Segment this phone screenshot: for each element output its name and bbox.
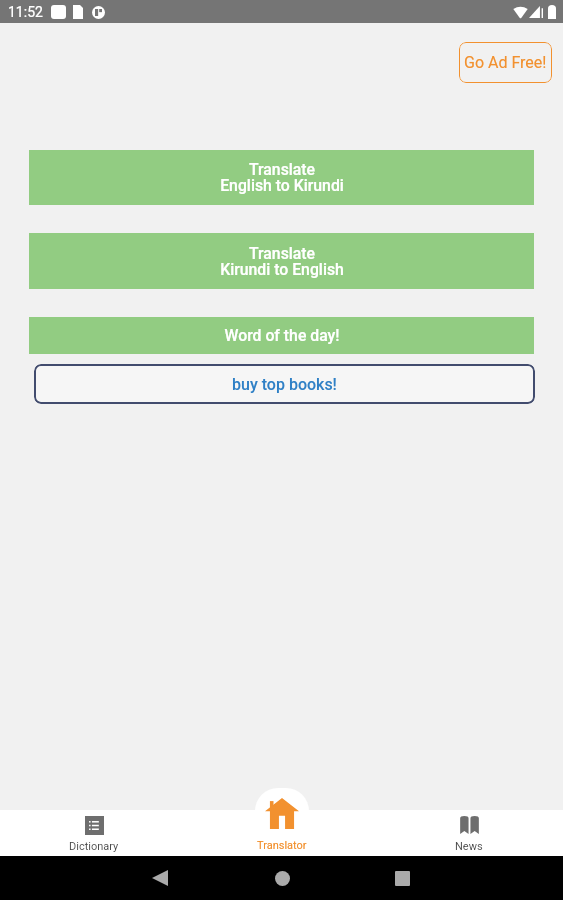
button[interactable]: Word of the day! — [29, 317, 534, 354]
button[interactable]: buy top books! — [34, 364, 535, 404]
button[interactable]: Recents — [382, 858, 422, 898]
button[interactable]: News — [375, 810, 563, 856]
staticText: Dictionary — [69, 840, 119, 853]
button[interactable]: Home — [262, 858, 302, 898]
staticText: 11:52 — [8, 4, 43, 20]
staticText: Go Ad Free! — [464, 53, 547, 72]
button[interactable]: Translator — [255, 788, 309, 834]
staticText: Word of the day! — [224, 326, 340, 345]
staticText: Translate English to Kirundi — [220, 160, 344, 195]
button[interactable]: Translate English to Kirundi — [29, 150, 534, 205]
button[interactable]: Go Ad Free! — [459, 42, 552, 83]
button[interactable]: Back — [140, 858, 180, 898]
button[interactable]: Dictionary — [0, 810, 187, 856]
staticText: buy top books! — [232, 375, 337, 394]
button[interactable]: Translate Kirundi to English — [29, 233, 534, 289]
staticText: Translate Kirundi to English — [220, 244, 344, 279]
staticText: Translator — [257, 839, 307, 852]
staticText: News — [455, 840, 483, 853]
